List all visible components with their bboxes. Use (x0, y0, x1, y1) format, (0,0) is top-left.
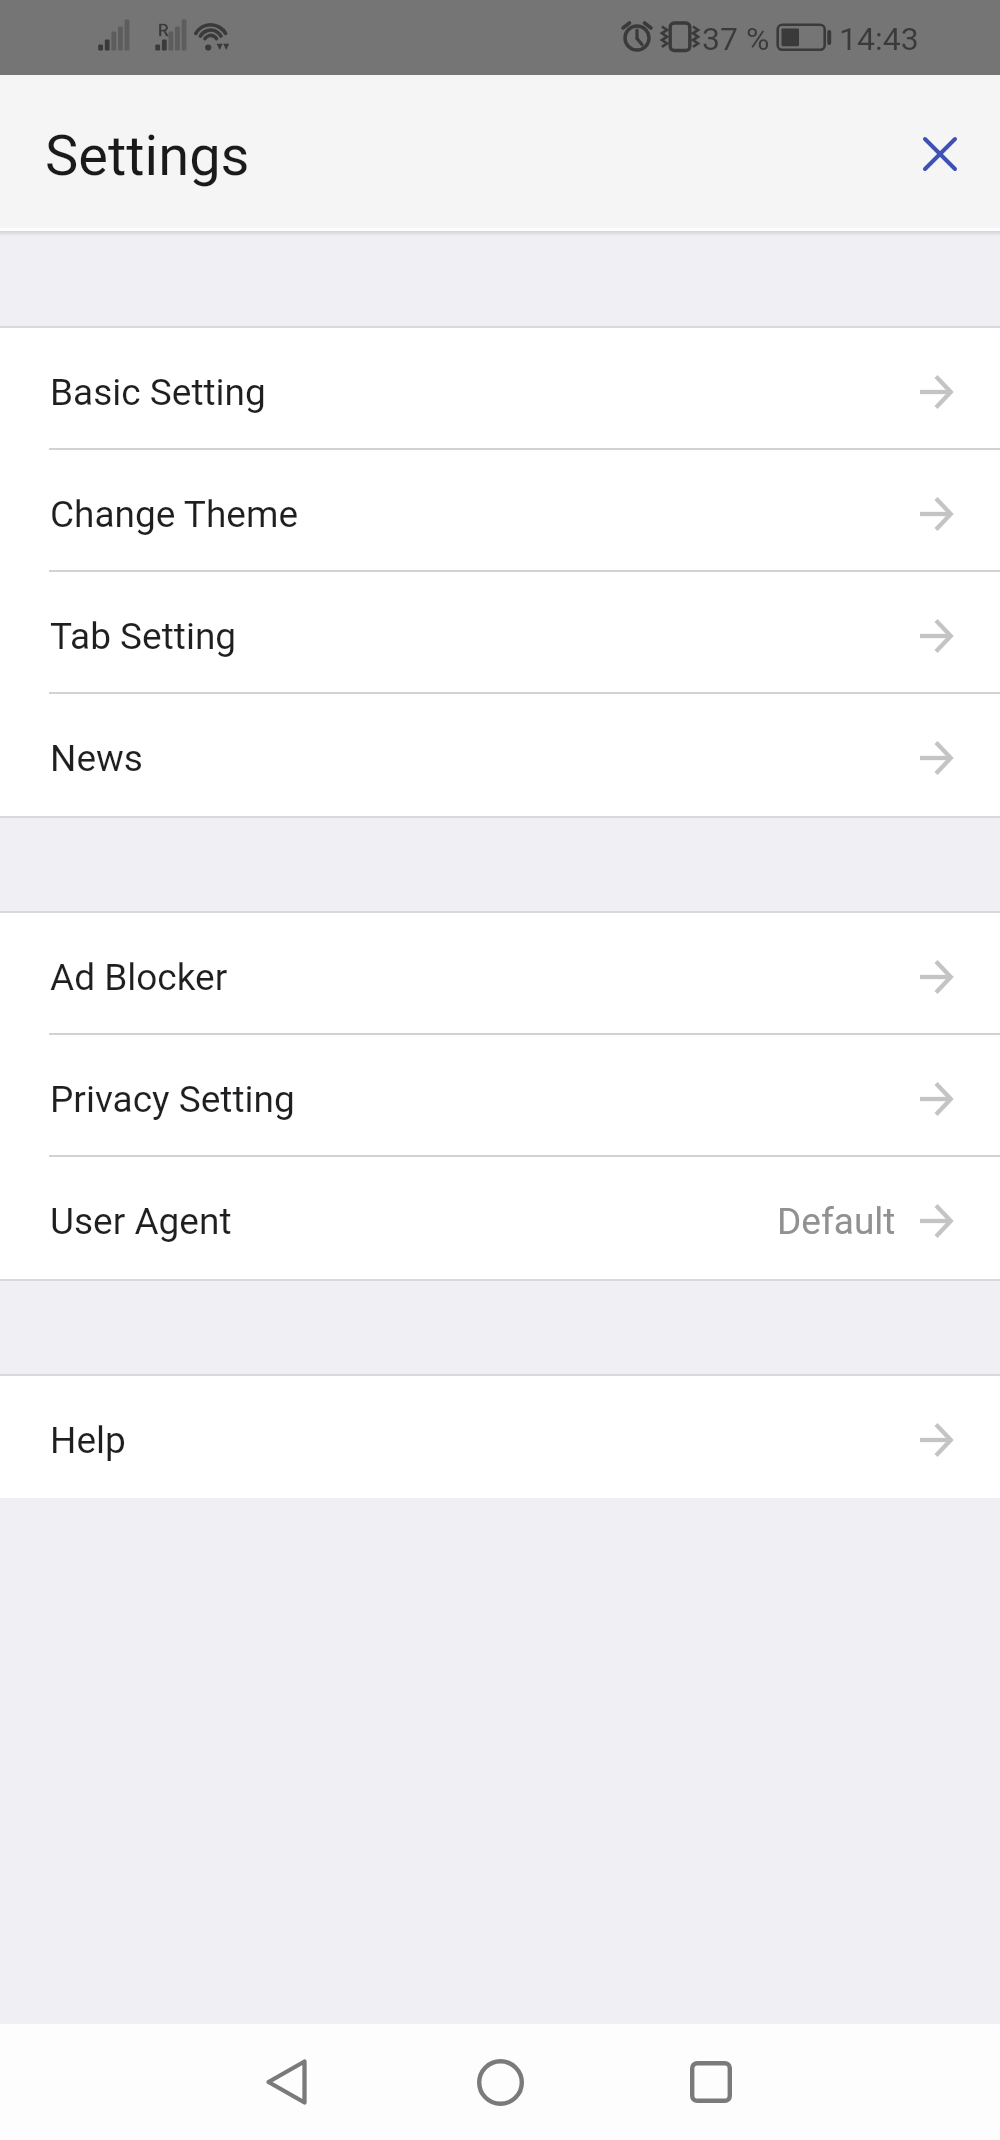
staticText: Basic Setting (50, 371, 266, 414)
staticText: Tab Setting (50, 615, 237, 658)
button[interactable]: User Agent (0, 1157, 1000, 1279)
button[interactable]: News (0, 694, 1000, 816)
button[interactable]: Home (442, 2024, 558, 2140)
staticText: R (158, 20, 169, 40)
button[interactable]: Tab Setting (0, 572, 1000, 694)
staticText: News (50, 737, 143, 780)
staticText: Settings (45, 123, 250, 189)
staticText: Change Theme (50, 493, 299, 536)
staticText: User Agent (50, 1200, 232, 1243)
staticText: Privacy Setting (50, 1078, 295, 1121)
button[interactable]: Basic Setting (0, 328, 1000, 450)
button[interactable]: Back (228, 2024, 344, 2140)
staticText: Help (50, 1419, 126, 1462)
button[interactable]: Privacy Setting (0, 1035, 1000, 1157)
button[interactable]: Ad Blocker (0, 913, 1000, 1035)
staticText: 37 % (702, 20, 770, 58)
staticText: 14:43 (839, 20, 919, 58)
staticText: Default (777, 1200, 896, 1243)
button[interactable]: Help (0, 1376, 1000, 1498)
staticText: Ad Blocker (50, 956, 228, 999)
button[interactable]: Change Theme (0, 450, 1000, 572)
button[interactable]: Close settings (896, 110, 984, 198)
button[interactable]: Recent apps (653, 2024, 769, 2140)
